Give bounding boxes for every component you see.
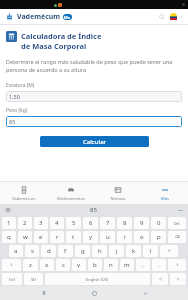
button[interactable]: English (US) <box>45 273 150 285</box>
button[interactable]: y <box>83 231 98 243</box>
button[interactable]: More suggestions <box>176 206 184 214</box>
button[interactable]: 4 <box>50 217 64 229</box>
button[interactable]: g <box>75 245 90 257</box>
button[interactable]: Recents <box>37 286 51 300</box>
button[interactable]: Search <box>157 12 167 22</box>
button[interactable]: Keyboard settings <box>4 206 12 214</box>
button[interactable]: a <box>9 245 23 257</box>
staticText: d <box>47 247 51 255</box>
button[interactable]: z <box>23 259 38 271</box>
button[interactable]: ↵ <box>160 245 178 257</box>
staticText: h <box>98 247 102 255</box>
button[interactable]: 85 <box>6 116 182 127</box>
staticText: ⇧ <box>10 263 13 267</box>
button[interactable]: Del <box>168 217 186 229</box>
staticText: w <box>23 233 28 241</box>
button[interactable]: 2 <box>18 217 32 229</box>
staticText: 8 <box>123 219 127 227</box>
button[interactable]: Home <box>5 12 14 21</box>
button[interactable]: n <box>104 259 118 271</box>
staticText: 85 <box>9 118 16 125</box>
staticText: ⇧ <box>176 263 179 267</box>
button[interactable]: w <box>18 231 32 243</box>
button[interactable]: 1,50 <box>6 91 182 102</box>
staticText: Mx <box>64 15 71 20</box>
button[interactable]: h <box>92 245 107 257</box>
button[interactable]: Select country <box>170 13 183 20</box>
staticText: q <box>7 233 11 241</box>
staticText: 3 <box>39 219 43 227</box>
staticText: ◁ <box>159 277 162 281</box>
button[interactable]: p <box>151 231 166 243</box>
button[interactable]: 3 <box>34 217 48 229</box>
button[interactable]: b <box>88 259 102 271</box>
button[interactable]: j <box>109 245 124 257</box>
staticText: o <box>140 233 144 241</box>
button[interactable]: ⇧ <box>2 259 21 271</box>
button[interactable]: 7 <box>100 217 115 229</box>
button[interactable]: u <box>100 231 115 243</box>
button[interactable]: r <box>50 231 64 243</box>
button[interactable]: m <box>120 259 134 271</box>
staticText: Más <box>161 196 169 201</box>
button[interactable]: v <box>72 259 86 271</box>
button[interactable]: 5 <box>66 217 81 229</box>
button[interactable]: t <box>66 231 81 243</box>
button[interactable]: f <box>58 245 73 257</box>
button[interactable]: l <box>143 245 158 257</box>
button[interactable]: 8 <box>117 217 132 229</box>
staticText: !#1 <box>31 277 37 282</box>
button[interactable]: ⇧ <box>168 259 186 271</box>
button[interactable]: k <box>126 245 141 257</box>
button[interactable]: ▷ <box>170 273 186 285</box>
button[interactable]: 6 <box>83 217 98 229</box>
button[interactable]: o <box>134 231 149 243</box>
button[interactable]: s <box>25 245 39 257</box>
button[interactable]: Ctrl <box>2 273 22 285</box>
staticText: 5 <box>72 219 76 227</box>
staticText: Vademécum <box>17 12 61 22</box>
staticText: Calcular <box>83 138 107 146</box>
staticText: r <box>56 233 59 241</box>
staticText: a <box>14 247 18 255</box>
staticText: 6 <box>89 219 93 227</box>
button[interactable]: Vademécum <box>0 182 47 204</box>
staticText: v <box>77 261 81 269</box>
staticText: Vademécum <box>12 196 36 201</box>
button[interactable]: Más <box>141 182 188 204</box>
button[interactable]: ⌫ <box>168 231 186 243</box>
button[interactable]: i <box>117 231 132 243</box>
button[interactable]: Home <box>87 286 101 300</box>
staticText: 1 <box>7 219 11 227</box>
button[interactable]: c <box>56 259 70 271</box>
button[interactable]: d <box>41 245 56 257</box>
button[interactable]: q <box>2 231 16 243</box>
staticText: b <box>93 261 97 269</box>
staticText: 2 <box>23 219 27 227</box>
button[interactable]: Medicamentos <box>47 182 94 204</box>
staticText: j <box>116 247 118 255</box>
staticText: i <box>124 233 126 241</box>
button[interactable]: 0 <box>151 217 166 229</box>
staticText: 1,50 <box>9 93 20 100</box>
button[interactable]: , <box>136 259 150 271</box>
staticText: x <box>45 261 49 269</box>
button[interactable]: Back <box>138 286 152 300</box>
button[interactable]: ◁ <box>152 273 168 285</box>
button[interactable]: Calcular <box>40 136 149 147</box>
button[interactable]: 9 <box>134 217 149 229</box>
staticText: Peso (kg) <box>6 107 28 114</box>
staticText: ▷ <box>177 277 180 281</box>
staticText: Determine el rango más saludable de peso… <box>6 58 182 74</box>
staticText: Medicamentos <box>57 196 85 201</box>
button[interactable]: e <box>34 231 48 243</box>
staticText: Noticias <box>110 196 126 201</box>
button[interactable]: . <box>152 259 166 271</box>
staticText: t <box>72 233 75 241</box>
button[interactable]: 1 <box>2 217 16 229</box>
staticText: ↵ <box>168 249 171 253</box>
button[interactable]: !#1 <box>24 273 43 285</box>
staticText: k <box>132 247 136 255</box>
button[interactable]: x <box>40 259 54 271</box>
button[interactable]: Noticias <box>94 182 141 204</box>
